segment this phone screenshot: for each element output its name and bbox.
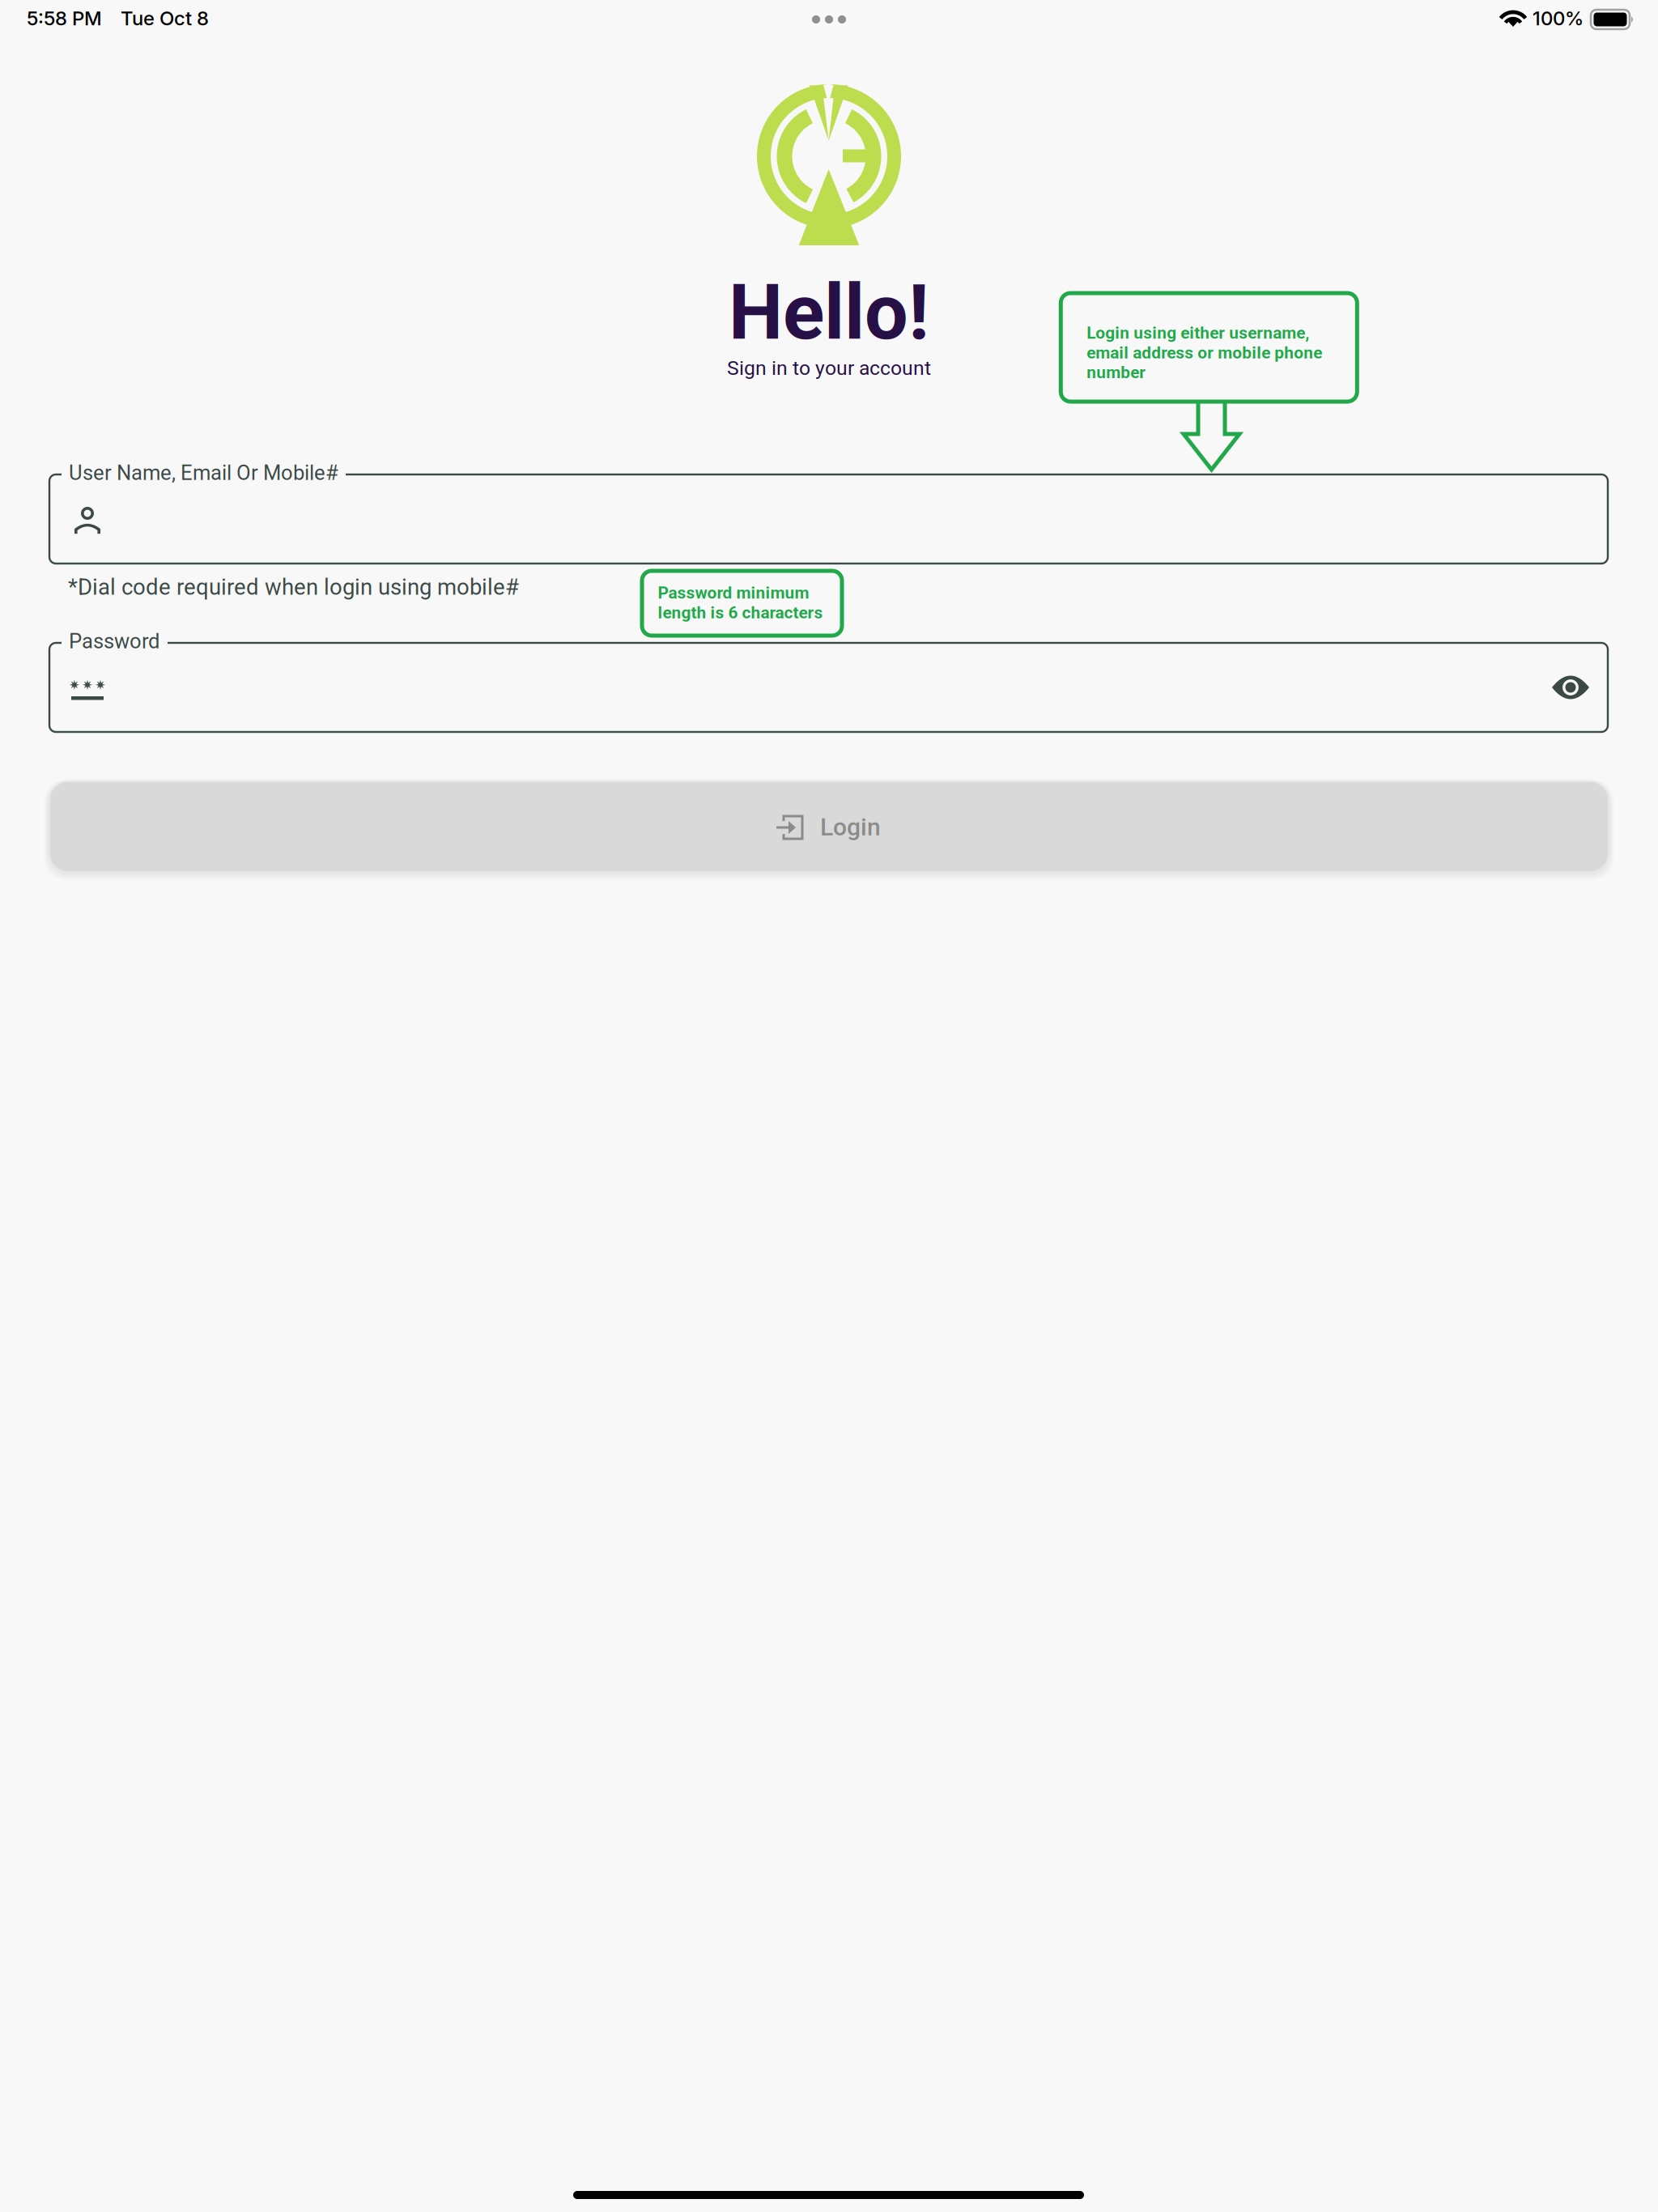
staticText: Password [69,629,159,653]
button[interactable]: Login [50,782,1608,871]
staticText: Login using either username, [1087,323,1309,343]
button[interactable]: Show password [1541,658,1600,717]
staticText: Password minimum [658,583,809,603]
button[interactable]: User Name, Email Or Mobile# [49,474,1608,564]
staticText: 5:58 PM [27,6,102,30]
staticText: Sign in to your account [727,356,931,380]
staticText: *Dial code required when login using mob… [68,574,519,600]
staticText: number [1087,363,1146,382]
staticText: length is 6 characters [658,603,823,622]
staticText: Hello! [729,267,929,357]
staticText: User Name, Email Or Mobile# [69,461,338,485]
staticText: 100% [1533,6,1584,30]
staticText: email address or mobile phone [1087,343,1322,363]
button[interactable]: Password [49,643,1608,732]
staticText: Login [820,813,881,841]
staticText: Tue Oct 8 [121,6,209,30]
